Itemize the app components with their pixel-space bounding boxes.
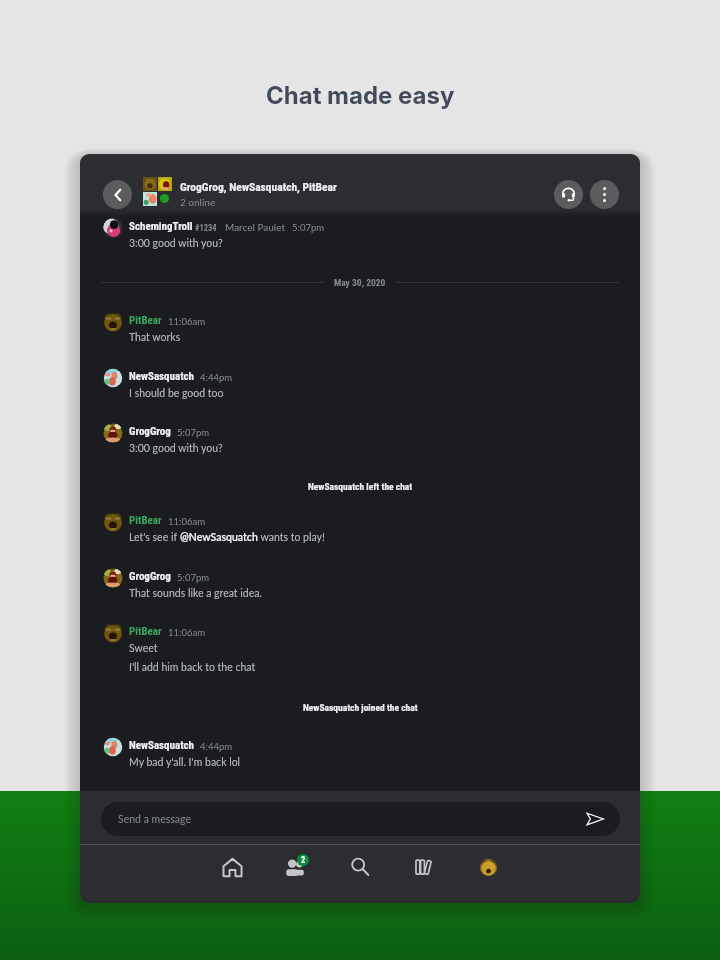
staticText: Send a message	[118, 813, 191, 826]
staticText: PitBear	[129, 625, 162, 638]
staticText: I should be good too	[129, 387, 224, 400]
button[interactable]: Friends	[272, 843, 320, 891]
staticText: #1234	[195, 223, 217, 233]
staticText: 3:00 good with you?	[129, 237, 223, 250]
staticText: PitBear	[129, 514, 162, 527]
staticText: 4:44pm	[200, 741, 233, 752]
staticText: 11:06am	[168, 516, 205, 527]
staticText: That sounds like a great idea.	[129, 587, 262, 600]
staticText: 4:44pm	[200, 372, 233, 383]
staticText: NewSasquatch left the chat	[308, 481, 413, 492]
staticText: That works	[129, 331, 181, 344]
staticText: 3:00 good with you?	[129, 442, 223, 455]
staticText: GrogGrog	[129, 425, 171, 438]
button[interactable]: Search	[336, 843, 384, 891]
staticText: Marcel Paulet	[225, 221, 286, 233]
staticText: wants to play!	[258, 531, 325, 544]
other: Send	[586, 810, 604, 828]
staticText: I'll add him back to the chat	[129, 661, 256, 674]
button[interactable]: Voice call	[554, 180, 583, 209]
button[interactable]: Library	[400, 843, 448, 891]
staticText: Sweet	[129, 642, 158, 655]
staticText: Let's see if	[129, 531, 180, 544]
button[interactable]: More options	[590, 180, 619, 209]
staticText: 5:07pm	[177, 427, 210, 438]
staticText: May 30, 2020	[334, 277, 386, 288]
staticText: GrogGrog, NewSasquatch, PitBear	[180, 180, 337, 193]
button[interactable]: Back	[103, 180, 132, 209]
button[interactable]: Send a message	[101, 802, 620, 836]
staticText: SchemingTroll	[129, 220, 193, 233]
staticText: NewSasquatch	[129, 370, 194, 383]
staticText: 2	[301, 855, 306, 865]
button[interactable]: Profile	[464, 843, 512, 891]
staticText: PitBear	[129, 314, 162, 327]
staticText: 5:07pm	[177, 572, 210, 583]
button[interactable]: Home	[208, 843, 256, 891]
staticText: 11:06am	[168, 627, 205, 638]
staticText: Chat made easy	[266, 81, 455, 110]
staticText: GrogGrog	[129, 570, 171, 583]
staticText: My bad y'all. I'm back lol	[129, 756, 241, 769]
staticText: @NewSasquatch	[180, 531, 258, 544]
staticText: 11:06am	[168, 316, 205, 327]
staticText: 5:07pm	[292, 222, 325, 233]
staticText: NewSasquatch	[129, 739, 194, 752]
staticText: 2 online	[180, 196, 216, 208]
staticText: NewSasquatch joined the chat	[303, 702, 418, 713]
